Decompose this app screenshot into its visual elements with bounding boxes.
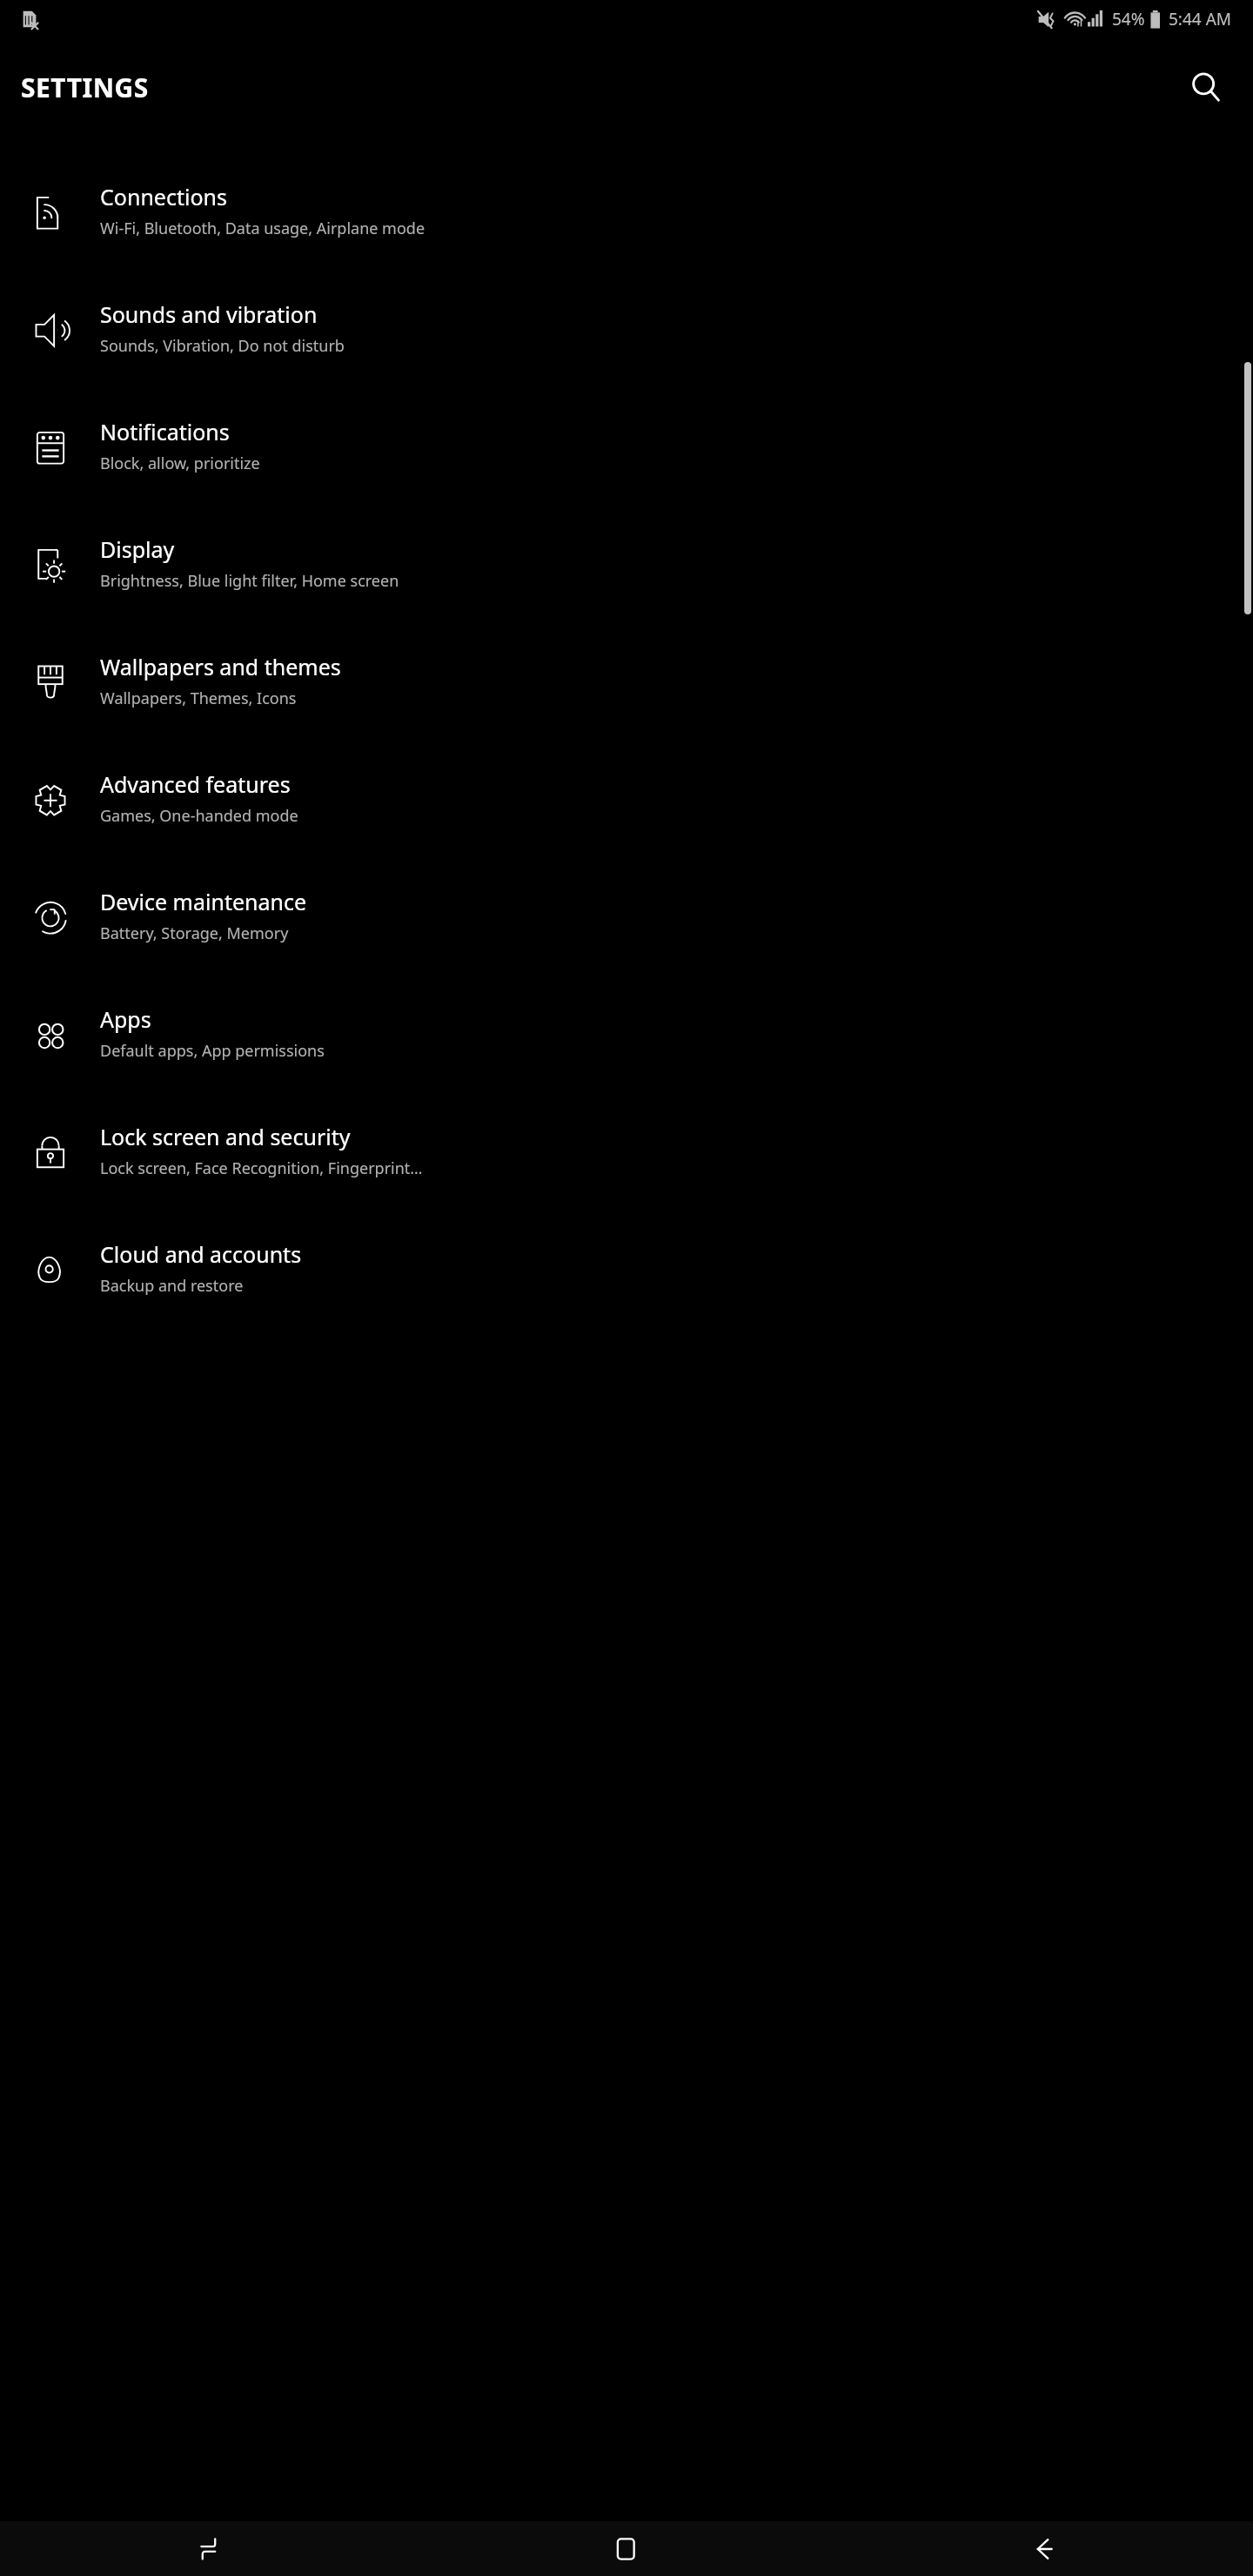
staticText: Display	[100, 534, 175, 564]
button[interactable]: Lock screen and security	[0, 1091, 1253, 1209]
staticText: Block, allow, prioritize	[100, 453, 260, 474]
staticText: Wallpapers, Themes, Icons	[100, 688, 297, 709]
staticText: Games, One-handed mode	[100, 805, 298, 827]
staticText: Device maintenance	[100, 887, 307, 916]
button[interactable]: Apps	[0, 974, 1253, 1091]
staticText: Lock screen and security	[100, 1122, 351, 1151]
staticText: Connections	[100, 182, 227, 211]
staticText: Wi-Fi, Bluetooth, Data usage, Airplane m…	[100, 218, 425, 239]
button[interactable]: Device maintenance	[0, 856, 1253, 974]
staticText: Wallpapers and themes	[100, 652, 341, 681]
button[interactable]: Recents	[0, 2521, 418, 2576]
button[interactable]: Notifications	[0, 386, 1253, 504]
button[interactable]: Display	[0, 504, 1253, 621]
staticText: Advanced features	[100, 769, 291, 799]
button[interactable]: Search	[1182, 63, 1230, 111]
button[interactable]: Cloud and accounts	[0, 1209, 1253, 1326]
button[interactable]: Connections	[0, 151, 1253, 269]
staticText: Notifications	[100, 417, 230, 446]
button[interactable]: Wallpapers and themes	[0, 621, 1253, 739]
button[interactable]: Home	[418, 2521, 835, 2576]
staticText: Backup and restore	[100, 1275, 244, 1297]
button[interactable]: Back	[835, 2521, 1253, 2576]
staticText: Sounds, Vibration, Do not disturb	[100, 335, 345, 357]
staticText: 5:44 AM	[1169, 8, 1232, 30]
staticText: Brightness, Blue light filter, Home scre…	[100, 570, 399, 592]
button[interactable]: Sounds and vibration	[0, 269, 1253, 386]
button[interactable]: Advanced features	[0, 739, 1253, 856]
staticText: Battery, Storage, Memory	[100, 922, 289, 944]
staticText: Cloud and accounts	[100, 1239, 302, 1269]
staticText: SETTINGS	[21, 70, 149, 105]
staticText: 54%	[1112, 8, 1145, 30]
staticText: Sounds and vibration	[100, 299, 318, 329]
staticText: Default apps, App permissions	[100, 1040, 325, 1062]
staticText: Lock screen, Face Recognition, Fingerpri…	[100, 1157, 423, 1179]
staticText: Apps	[100, 1004, 151, 1034]
